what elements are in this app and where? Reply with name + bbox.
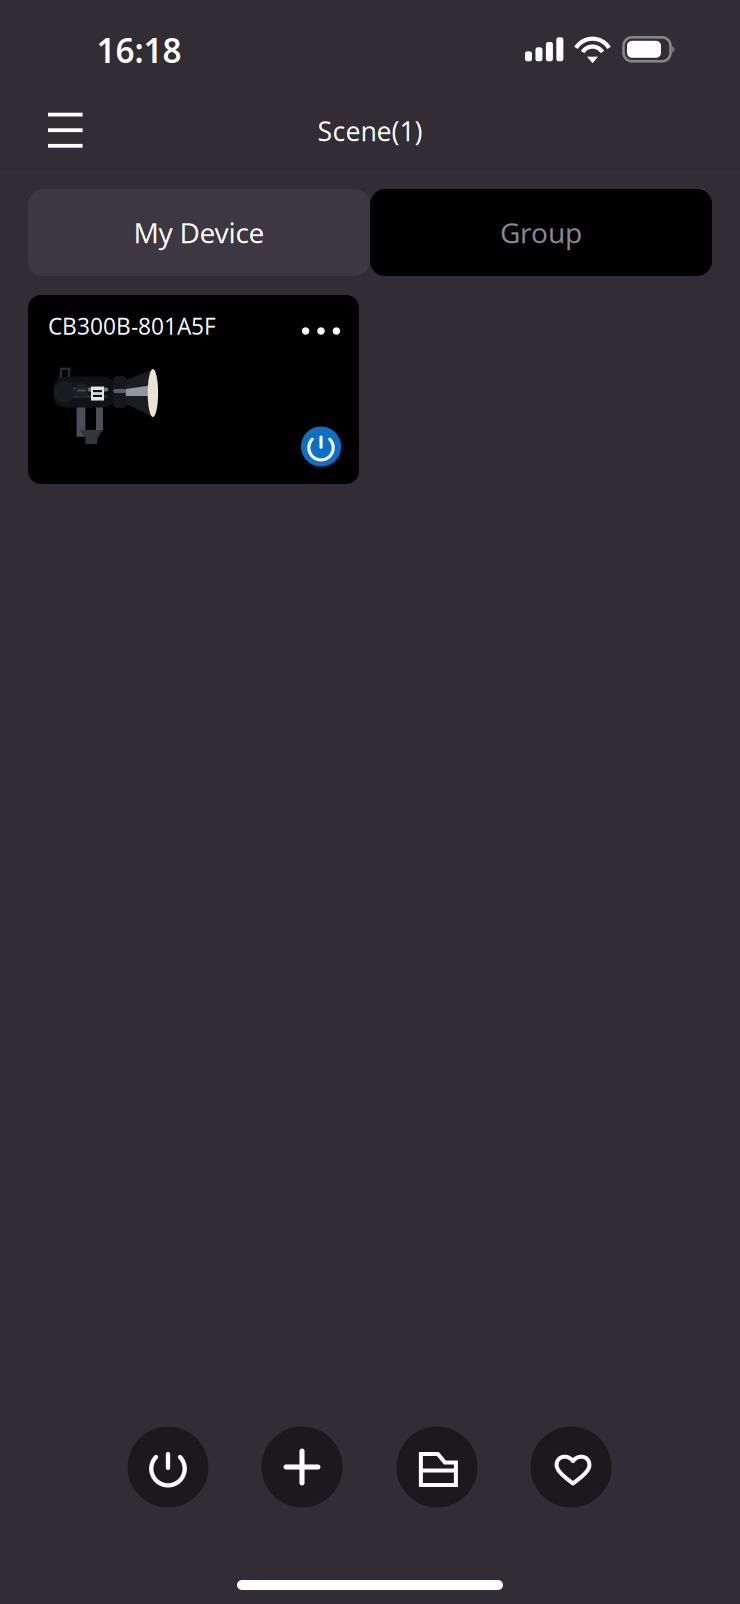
button[interactable]: Add bbox=[261, 1426, 342, 1507]
button[interactable]: My Device bbox=[28, 189, 370, 276]
button[interactable]: Toggle light power bbox=[293, 418, 349, 474]
button[interactable]: Favourites bbox=[530, 1426, 611, 1507]
button[interactable]: Power bbox=[127, 1426, 208, 1507]
staticText: Scene(1) bbox=[317, 113, 422, 149]
button[interactable]: Scenes bbox=[396, 1426, 477, 1507]
staticText: Group bbox=[500, 214, 582, 251]
staticText: 16:18 bbox=[96, 28, 181, 72]
staticText: CB300B-801A5F bbox=[48, 311, 216, 341]
button[interactable]: Group bbox=[370, 189, 712, 276]
button[interactable]: Menu bbox=[22, 92, 108, 168]
button[interactable]: More options bbox=[286, 305, 356, 357]
button[interactable]: CB300B-801A5F bbox=[28, 295, 359, 484]
staticText: My Device bbox=[133, 214, 264, 251]
